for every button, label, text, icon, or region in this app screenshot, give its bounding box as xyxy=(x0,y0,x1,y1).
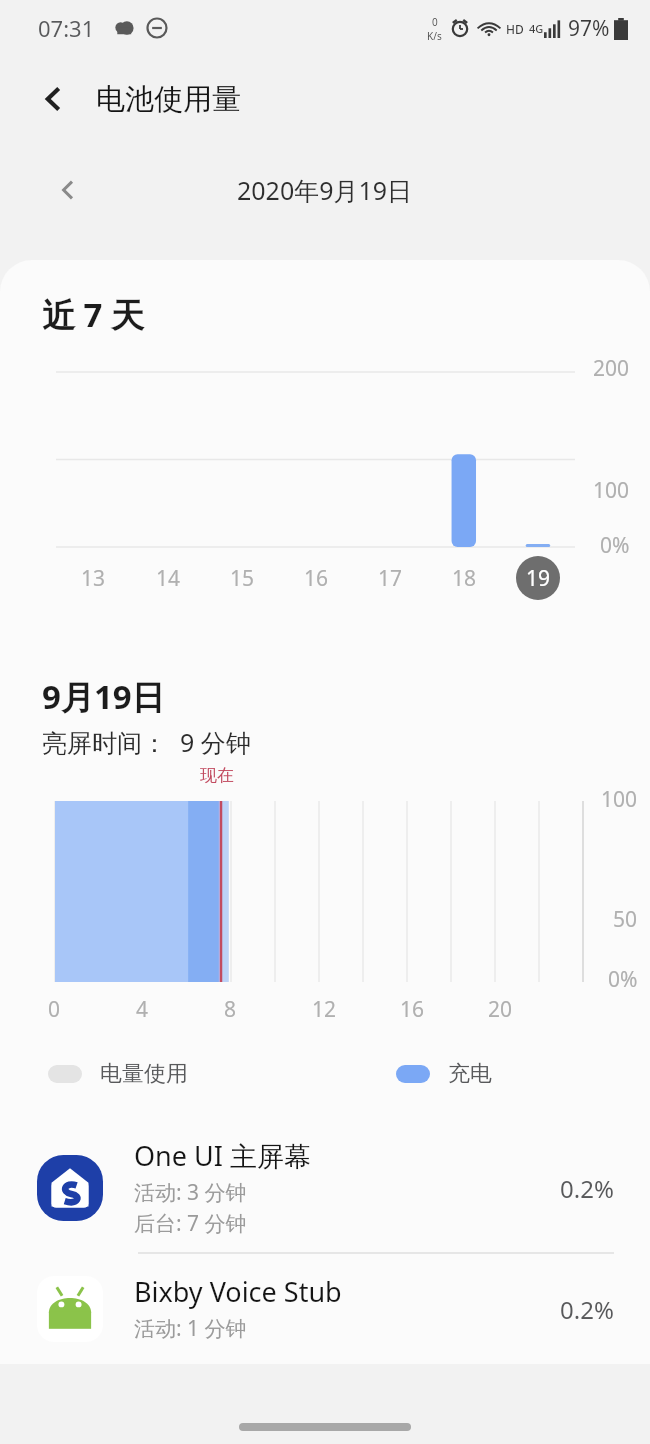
staticText: 现在 xyxy=(200,765,234,786)
staticText: 后台: 7 分钟 xyxy=(134,1209,247,1238)
staticText: 0% xyxy=(608,965,638,994)
staticText: 17 xyxy=(378,564,403,593)
staticText: 0.2% xyxy=(560,1172,614,1205)
staticText: 13 xyxy=(81,564,106,593)
button[interactable]: Bixby Voice Stub xyxy=(0,1254,650,1364)
staticText: 活动: 1 分钟 xyxy=(134,1314,247,1343)
staticText: 4 xyxy=(136,995,149,1024)
staticText: 充电 xyxy=(448,1060,492,1088)
staticText: 4G xyxy=(529,21,544,36)
staticText: 100 xyxy=(593,476,630,505)
staticText: Bixby Voice Stub xyxy=(134,1273,342,1310)
staticText: 97% xyxy=(568,14,610,43)
staticText: 50 xyxy=(613,905,638,934)
button[interactable]: Back xyxy=(28,73,80,125)
button[interactable]: Previous day xyxy=(44,166,92,214)
staticText: One UI 主屏幕 xyxy=(134,1137,311,1174)
staticText: 0 xyxy=(432,15,438,29)
button[interactable]: 19 xyxy=(516,556,560,600)
staticText: 07:31 xyxy=(38,13,95,43)
staticText: 电池使用量 xyxy=(96,81,241,118)
staticText: 电量使用 xyxy=(100,1060,188,1088)
staticText: 200 xyxy=(593,354,630,383)
staticText: 9月19日 xyxy=(42,674,165,719)
staticText: 16 xyxy=(400,995,425,1024)
staticText: K/s xyxy=(427,29,442,43)
staticText: 14 xyxy=(156,564,181,593)
staticText: HD xyxy=(506,21,524,37)
staticText: 0% xyxy=(600,531,630,560)
staticText: 19 xyxy=(526,564,551,593)
staticText: 16 xyxy=(304,564,329,593)
staticText: 2020年9月19日 xyxy=(237,173,413,207)
staticText: 15 xyxy=(230,564,255,593)
staticText: 20 xyxy=(488,995,513,1024)
staticText: 活动: 3 分钟 xyxy=(134,1178,247,1207)
staticText: 近 7 天 xyxy=(42,292,145,337)
staticText: 8 xyxy=(224,995,237,1024)
staticText: 18 xyxy=(452,564,477,593)
staticText: 12 xyxy=(312,995,337,1024)
staticText: 100 xyxy=(601,785,638,814)
staticText: 0 xyxy=(48,995,61,1024)
staticText: 亮屏时间： 9 分钟 xyxy=(42,725,251,759)
staticText: 0.2% xyxy=(560,1293,614,1326)
button[interactable]: One UI 主屏幕 xyxy=(0,1124,650,1252)
